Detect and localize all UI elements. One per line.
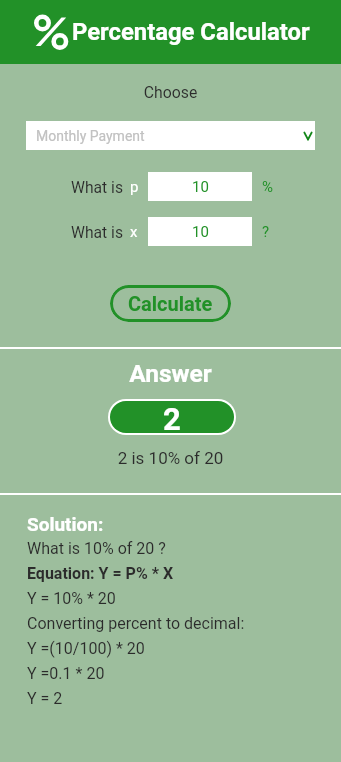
- staticText: What is 10% of 20 ?: [27, 539, 166, 558]
- staticText: 2 is 10% of 20: [0, 448, 341, 468]
- staticText: x: [130, 223, 138, 241]
- staticText: Equation: Y = P% * X: [27, 564, 174, 583]
- staticText: Monthly Payment: [36, 128, 145, 144]
- staticText: 2: [163, 401, 181, 433]
- staticText: %: [262, 178, 273, 196]
- staticText: Y =0.1 * 20: [27, 664, 105, 683]
- staticText: Solution:: [27, 513, 104, 535]
- staticText: Calculate: [128, 292, 213, 315]
- button[interactable]: 10: [148, 172, 252, 201]
- staticText: Y = 10% * 20: [27, 589, 116, 608]
- staticText: What is: [71, 223, 124, 241]
- staticText: Choose: [0, 83, 341, 102]
- button[interactable]: 2: [110, 401, 234, 433]
- button[interactable]: Percentage Calculator logo: [31, 0, 341, 64]
- button[interactable]: 10: [148, 217, 252, 246]
- staticText: 10: [192, 178, 209, 196]
- button[interactable]: Monthly Payment: [26, 121, 315, 150]
- staticText: Answer: [0, 359, 341, 388]
- other: Percentage Calculator logo: [31, 14, 69, 50]
- staticText: Converting percent to decimal:: [27, 614, 245, 633]
- staticText: p: [130, 178, 139, 196]
- staticText: Percentage Calculator: [72, 18, 310, 46]
- staticText: Y = 2: [27, 689, 63, 708]
- staticText: What is: [71, 178, 124, 196]
- button[interactable]: Calculate: [110, 285, 231, 322]
- staticText: Y =(10/100) * 20: [27, 639, 145, 658]
- staticText: 10: [192, 223, 209, 241]
- staticText: ?: [262, 223, 270, 241]
